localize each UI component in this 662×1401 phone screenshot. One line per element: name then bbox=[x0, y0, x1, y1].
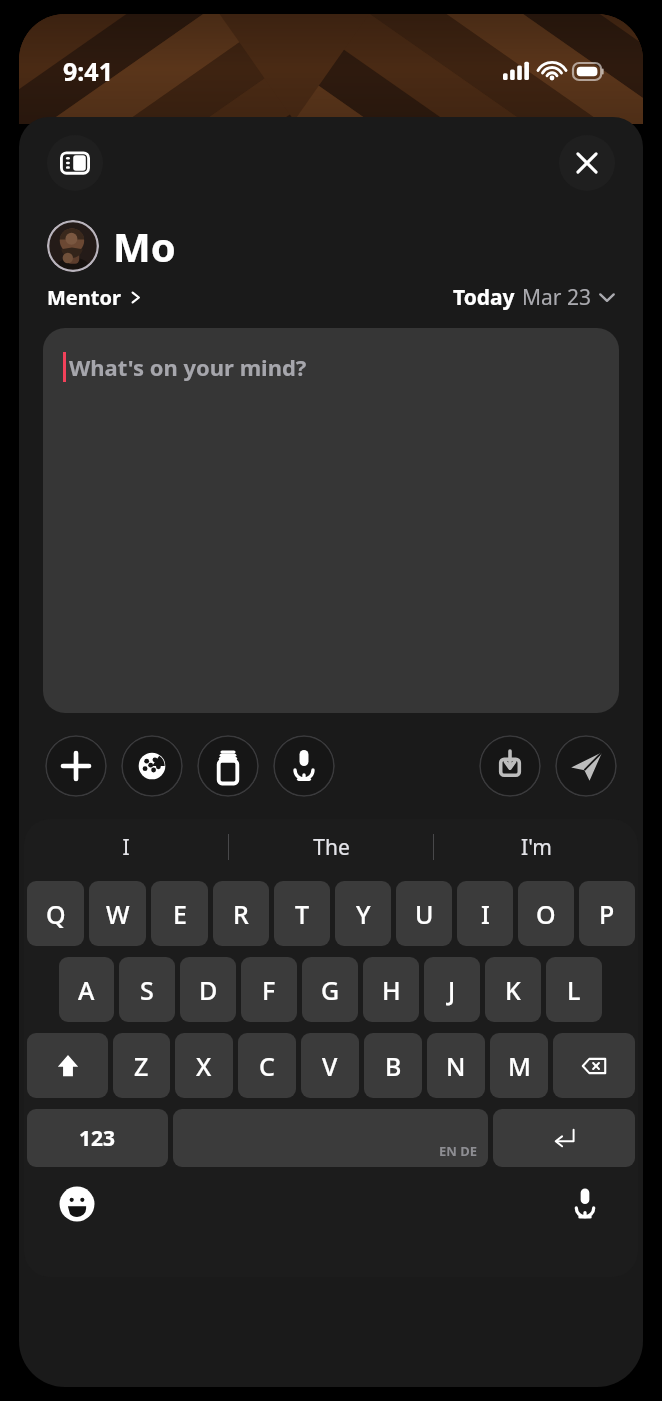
button[interactable]: D bbox=[180, 957, 236, 1022]
button[interactable]: Voice typing bbox=[562, 1181, 608, 1227]
staticText: Z bbox=[134, 1049, 149, 1083]
staticText: N bbox=[446, 1049, 466, 1083]
staticText: Q bbox=[46, 897, 66, 931]
button[interactable]: Add bbox=[45, 735, 107, 797]
button[interactable]: I bbox=[457, 881, 513, 946]
button[interactable]: Enter bbox=[493, 1109, 635, 1167]
button[interactable]: V bbox=[301, 1033, 359, 1098]
staticText: I bbox=[122, 833, 130, 862]
button[interactable]: N bbox=[427, 1033, 485, 1098]
staticText: R bbox=[233, 897, 249, 931]
button[interactable]: E bbox=[151, 881, 208, 946]
button[interactable]: Q bbox=[27, 881, 84, 946]
staticText: Mentor bbox=[47, 284, 121, 311]
button[interactable]: Z bbox=[113, 1033, 170, 1098]
staticText: The bbox=[313, 833, 350, 862]
button[interactable]: S bbox=[119, 957, 175, 1022]
button[interactable]: Send bbox=[555, 735, 617, 797]
button[interactable]: U bbox=[396, 881, 452, 946]
button[interactable]: B bbox=[364, 1033, 422, 1098]
staticText: G bbox=[321, 973, 340, 1007]
button[interactable]: M bbox=[490, 1033, 548, 1098]
button[interactable]: O bbox=[518, 881, 574, 946]
staticText: A bbox=[78, 973, 95, 1007]
staticText: F bbox=[262, 973, 276, 1007]
button[interactable]: Backspace bbox=[553, 1033, 635, 1098]
button[interactable]: A bbox=[59, 957, 114, 1022]
staticText: W bbox=[106, 897, 130, 931]
staticText: O bbox=[536, 897, 556, 931]
staticText: What's on your mind? bbox=[69, 352, 307, 382]
button[interactable]: Mentor bbox=[47, 284, 142, 311]
staticText: X bbox=[196, 1049, 212, 1083]
button[interactable]: P bbox=[579, 881, 635, 946]
button[interactable]: Voice input bbox=[273, 735, 335, 797]
button[interactable]: Save bbox=[479, 735, 541, 797]
button[interactable]: Shift bbox=[27, 1033, 108, 1098]
button[interactable]: L bbox=[546, 957, 602, 1022]
button[interactable]: Emoji bbox=[54, 1181, 100, 1227]
button[interactable]: C bbox=[238, 1033, 296, 1098]
button[interactable]: H bbox=[363, 957, 419, 1022]
button[interactable]: Profile photo bbox=[47, 220, 99, 272]
staticText: EN DE bbox=[439, 1142, 478, 1160]
button[interactable]: F bbox=[241, 957, 297, 1022]
staticText: I bbox=[481, 897, 490, 931]
button[interactable]: The bbox=[229, 819, 433, 875]
staticText: Today bbox=[453, 283, 515, 312]
staticText: Mar 23 bbox=[522, 283, 591, 312]
staticText: U bbox=[415, 897, 434, 931]
button[interactable]: G bbox=[302, 957, 358, 1022]
staticText: K bbox=[505, 973, 521, 1007]
button[interactable]: What's on your mind? bbox=[43, 328, 619, 713]
staticText: M bbox=[508, 1049, 531, 1083]
button[interactable]: Today bbox=[453, 283, 615, 312]
staticText: Y bbox=[356, 897, 371, 931]
staticText: T bbox=[295, 897, 310, 931]
staticText: P bbox=[599, 897, 615, 931]
button[interactable]: I'm bbox=[434, 819, 638, 875]
staticText: E bbox=[173, 897, 187, 931]
staticText: H bbox=[382, 973, 401, 1007]
button[interactable]: 123 bbox=[27, 1109, 168, 1167]
button[interactable]: J bbox=[424, 957, 480, 1022]
staticText: B bbox=[385, 1049, 402, 1083]
button[interactable]: Close bbox=[559, 135, 615, 191]
button[interactable]: Jar bbox=[197, 735, 259, 797]
button[interactable]: Space bbox=[173, 1109, 488, 1167]
staticText: J bbox=[448, 973, 456, 1007]
staticText: S bbox=[140, 973, 154, 1007]
button[interactable]: K bbox=[485, 957, 541, 1022]
button[interactable]: I bbox=[24, 819, 228, 875]
button[interactable]: Palette bbox=[121, 735, 183, 797]
button[interactable]: X bbox=[175, 1033, 233, 1098]
staticText: I'm bbox=[521, 833, 552, 862]
button[interactable]: Sidebar bbox=[47, 135, 103, 191]
staticText: 9:41 bbox=[63, 54, 113, 88]
staticText: V bbox=[322, 1049, 338, 1083]
staticText: 123 bbox=[79, 1124, 116, 1153]
staticText: D bbox=[199, 973, 218, 1007]
staticText: C bbox=[259, 1049, 275, 1083]
button[interactable]: R bbox=[213, 881, 269, 946]
button[interactable]: Y bbox=[335, 881, 391, 946]
staticText: L bbox=[567, 973, 581, 1007]
button[interactable]: W bbox=[89, 881, 146, 946]
staticText: Mo bbox=[113, 219, 176, 273]
button[interactable]: T bbox=[274, 881, 330, 946]
